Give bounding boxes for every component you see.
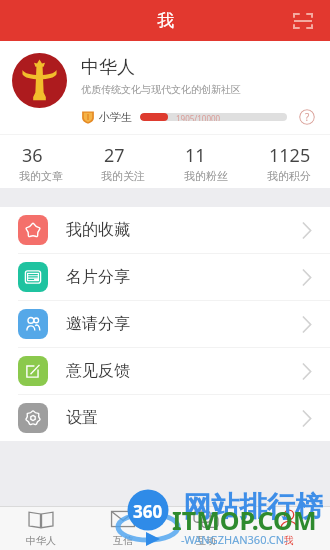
staticText: 设置 — [66, 408, 98, 428]
button[interactable]: 我的收藏 — [0, 207, 330, 253]
button[interactable]: Scan QR code — [289, 7, 317, 35]
button[interactable]: 名片分享 — [0, 254, 330, 300]
button[interactable]: 我 — [247, 507, 330, 550]
button[interactable]: 36 — [0, 135, 82, 188]
button[interactable]: 11 — [164, 135, 247, 188]
staticText: 我 — [157, 10, 174, 31]
staticText: 小学生 — [99, 110, 132, 124]
staticText: 意见反馈 — [66, 361, 130, 381]
staticText: ? — [305, 110, 310, 124]
staticText: 36 — [22, 143, 43, 168]
button[interactable]: 互信 — [82, 507, 164, 550]
staticText: 邀请分享 — [66, 314, 130, 334]
staticText: ITMOP.COM — [172, 503, 317, 537]
staticText: 我 — [284, 534, 294, 547]
staticText: 网站排行榜 — [183, 489, 323, 524]
staticText: 27 — [104, 143, 125, 168]
button[interactable]: 意见反馈 — [0, 348, 330, 394]
button[interactable]: 设置 — [0, 395, 330, 441]
button[interactable]: 1125 — [247, 135, 330, 188]
staticText: -WANGZHAN360.CN- — [181, 532, 288, 547]
staticText: 1905/10000 — [176, 113, 221, 121]
button[interactable]: 互动 — [164, 507, 247, 550]
staticText: 中华人 — [26, 534, 56, 547]
staticText: 11 — [185, 143, 206, 168]
staticText: 我的粉丝 — [184, 169, 228, 183]
button[interactable]: 27 — [82, 135, 164, 188]
button[interactable]: 邀请分享 — [0, 301, 330, 347]
staticText: 360 — [133, 500, 163, 523]
staticText: 1125 — [269, 143, 311, 168]
staticText: 优质传统文化与现代文化的创新社区 — [81, 83, 241, 96]
staticText: 我的积分 — [267, 169, 311, 183]
button[interactable]: Help — [299, 109, 315, 125]
staticText: 中华人 — [81, 56, 135, 79]
staticText: 互信 — [113, 534, 133, 547]
button[interactable]: 中华人 — [0, 507, 82, 550]
staticText: 互动 — [196, 534, 216, 547]
staticText: 名片分享 — [66, 267, 130, 287]
staticText: 我的收藏 — [66, 220, 130, 240]
staticText: 我的关注 — [101, 169, 145, 183]
staticText: 我的文章 — [19, 169, 63, 183]
